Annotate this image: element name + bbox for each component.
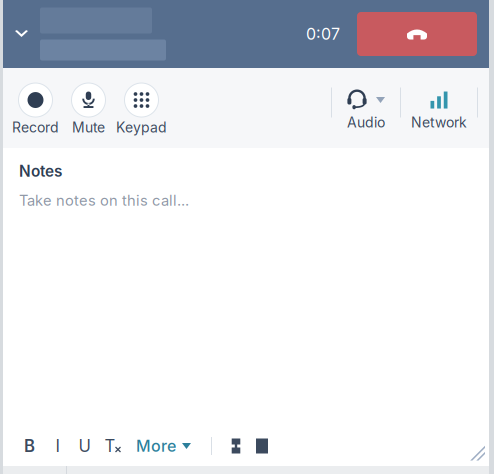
staticText: B [24,436,35,456]
button[interactable]: I [44,429,71,463]
button[interactable]: Collapse [3,0,40,68]
staticText: U [78,436,90,456]
staticText: Keypad [116,119,167,136]
button[interactable]: U [71,429,98,463]
button[interactable]: Mute [62,78,115,138]
button[interactable]: Insert template [249,429,275,463]
staticText: Mute [72,119,105,136]
button[interactable]: Clear formatting [98,429,127,463]
button[interactable]: End call [357,12,477,56]
button[interactable]: Insert link [223,429,249,463]
staticText: Take notes on this call... [19,192,189,209]
staticText: T [104,436,115,456]
button[interactable]: Network [401,78,477,138]
staticText: Notes [19,162,62,181]
button[interactable]: Audio [332,78,400,138]
staticText: More [136,436,176,456]
staticText: I [55,436,59,456]
staticText: 0:07 [306,24,340,44]
button[interactable]: B [15,429,44,463]
button[interactable]: Record [9,78,62,138]
button[interactable]: Keypad [115,78,168,138]
staticText: Record [12,119,59,136]
staticText: Network [411,114,467,131]
staticText: Audio [347,114,385,131]
button[interactable]: More [127,429,200,463]
